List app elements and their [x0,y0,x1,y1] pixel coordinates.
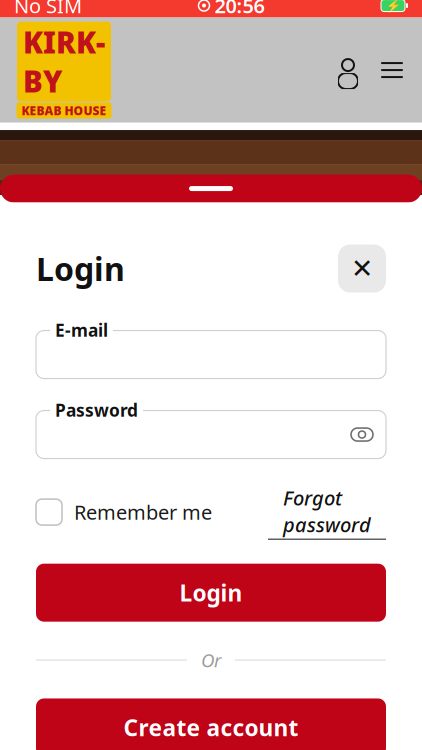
staticText: No SIM [14,0,82,19]
button[interactable]: Create account [36,698,386,750]
button[interactable]: Account [326,48,370,92]
staticText: Or [201,648,221,672]
button[interactable]: Login [36,564,386,622]
button[interactable]: Show password [344,416,380,452]
button[interactable]: Remember me [36,499,212,525]
button[interactable]: Forgot password [268,484,386,540]
button[interactable]: Menu [370,48,414,92]
staticText: 20:56 [214,0,264,19]
staticText: ✕ [351,253,373,284]
staticText: Password [55,398,138,421]
staticText: Login [36,247,125,290]
staticText: KIRKBY [23,23,105,100]
staticText: KEBAB HOUSE [21,102,106,118]
staticText: Forgot password [283,484,371,538]
staticText: Create account [123,712,298,742]
button[interactable]: Close [338,244,386,292]
staticText: Login [179,578,242,608]
staticText: ⚡ [385,0,400,12]
staticText: E-mail [55,318,108,341]
staticText: Remember me [74,499,212,525]
